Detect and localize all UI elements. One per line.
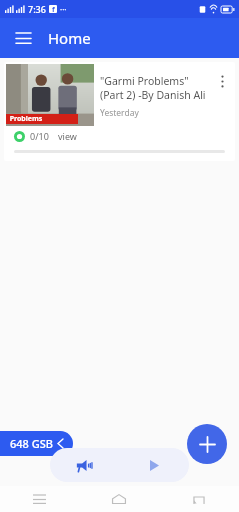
staticText: ··· — [60, 4, 67, 15]
staticText: view — [58, 130, 77, 142]
button[interactable]: Play — [119, 448, 189, 482]
button[interactable]: More options — [211, 70, 233, 92]
staticText: Home — [48, 28, 91, 48]
staticText: f — [52, 5, 55, 13]
button[interactable]: Add — [187, 424, 227, 464]
button[interactable]: 648 GSB — [0, 431, 73, 456]
staticText: 648 GSB — [10, 436, 53, 451]
button[interactable]: Problems — [4, 62, 235, 161]
button[interactable]: Back — [159, 486, 239, 512]
staticText: 0/10 — [30, 130, 49, 142]
button[interactable]: Announcements — [50, 448, 189, 482]
staticText: Yesterday — [100, 107, 139, 119]
staticText: Problems — [6, 114, 43, 124]
button[interactable]: Announcements — [50, 448, 119, 482]
button[interactable]: Open navigation menu — [8, 23, 38, 53]
button[interactable]: Home — [79, 486, 159, 512]
staticText: 7:36 — [28, 3, 46, 15]
button[interactable]: Recent apps — [0, 486, 79, 512]
staticText: "Garmi Problems" (Part 2) -By Danish Ali — [100, 74, 209, 102]
